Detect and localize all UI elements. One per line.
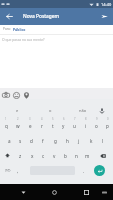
staticText: u <box>73 123 76 129</box>
button[interactable]: Maiusculas <box>0 148 14 163</box>
button[interactable]: Público <box>13 27 26 32</box>
staticText: , <box>17 168 19 174</box>
staticText: i <box>85 123 87 129</box>
button[interactable]: Enviar <box>97 8 111 25</box>
button[interactable]: Início <box>43 184 65 200</box>
button[interactable]: ?!© <box>0 163 16 178</box>
staticText: h <box>66 138 69 144</box>
staticText: 0 <box>107 117 109 121</box>
button[interactable]: não <box>71 103 95 118</box>
staticText: g <box>54 138 57 144</box>
button[interactable]: Voltar <box>12 184 34 200</box>
staticText: O que passa na sua mente? <box>2 37 45 41</box>
staticText: 9 <box>96 117 98 121</box>
button[interactable]: g <box>49 133 61 148</box>
button[interactable]: 4 <box>36 116 47 131</box>
button[interactable]: 1 <box>0 116 12 131</box>
other: Fechar teclado <box>98 184 111 200</box>
button[interactable]: 8 <box>80 116 91 131</box>
button[interactable]: s <box>15 133 26 148</box>
staticText: Nova Postagem <box>23 13 60 20</box>
button[interactable]: Voz <box>95 103 108 118</box>
staticText: b <box>64 153 67 159</box>
staticText: c <box>42 153 45 159</box>
staticText: 4 <box>41 117 43 121</box>
button[interactable]: Recentes <box>75 184 97 200</box>
staticText: v <box>53 153 56 159</box>
staticText: 7 <box>74 117 76 121</box>
staticText: q <box>5 123 8 129</box>
staticText: . <box>83 168 85 174</box>
button[interactable]: 6 <box>58 116 69 131</box>
staticText: e <box>29 123 32 129</box>
staticText: 14:40 <box>101 2 112 7</box>
button[interactable]: Enter <box>94 165 105 176</box>
staticText: Para: <box>3 27 11 31</box>
staticText: 6 <box>63 117 65 121</box>
staticText: 5 <box>52 117 54 121</box>
button[interactable]: f <box>37 133 49 148</box>
button[interactable]: Emoji <box>11 90 21 100</box>
staticText: s <box>19 138 22 144</box>
staticText: ?!© <box>5 168 11 173</box>
staticText: 2 <box>17 117 19 121</box>
staticText: t <box>52 123 54 129</box>
button[interactable]: d <box>26 133 37 148</box>
staticText: k <box>90 138 93 144</box>
button[interactable]: n <box>71 148 82 163</box>
staticText: e <box>16 108 19 113</box>
button[interactable]: h <box>61 133 73 148</box>
button[interactable]: v <box>49 148 60 163</box>
staticText: a <box>8 138 11 144</box>
button[interactable]: c <box>38 148 49 163</box>
button[interactable]: , <box>13 163 23 178</box>
staticText: r <box>41 123 43 129</box>
staticText: f <box>42 138 44 144</box>
button[interactable]: Voltar <box>0 8 18 25</box>
button[interactable]: o <box>38 103 62 118</box>
button[interactable]: a <box>4 133 15 148</box>
staticText: não <box>79 108 87 113</box>
staticText: Público <box>13 27 26 32</box>
button[interactable]: x <box>26 148 38 163</box>
staticText: 8 <box>85 117 87 121</box>
button[interactable]: m <box>82 148 93 163</box>
button[interactable]: . <box>79 163 89 178</box>
button[interactable]: k <box>85 133 97 148</box>
button[interactable]: 9 <box>91 116 102 131</box>
staticText: p <box>106 123 109 129</box>
staticText: d <box>30 138 33 144</box>
button[interactable]: j <box>73 133 85 148</box>
button[interactable]: Local <box>21 90 31 100</box>
button[interactable]: 0 <box>102 116 113 131</box>
staticText: o <box>95 123 98 129</box>
staticText: w <box>16 123 20 129</box>
button[interactable]: 7 <box>69 116 80 131</box>
staticText: o <box>49 108 52 113</box>
button[interactable]: 5 <box>47 116 58 131</box>
staticText: 3 <box>29 117 31 121</box>
staticText: n <box>75 153 78 159</box>
button[interactable]: l <box>97 133 109 148</box>
staticText: 1 <box>5 117 7 121</box>
staticText: m <box>85 153 90 159</box>
staticText: x <box>31 153 34 159</box>
button[interactable]: e <box>5 103 29 118</box>
button[interactable]: 3 <box>24 116 36 131</box>
button[interactable]: 2 <box>12 116 24 131</box>
staticText: y <box>62 123 65 129</box>
button[interactable]: Foto <box>1 90 11 100</box>
button[interactable]: Apagar <box>93 148 113 163</box>
button[interactable]: b <box>60 148 71 163</box>
staticText: z <box>19 153 22 159</box>
staticText: j <box>78 138 80 144</box>
staticText: l <box>102 138 104 144</box>
button[interactable]: z <box>14 148 26 163</box>
